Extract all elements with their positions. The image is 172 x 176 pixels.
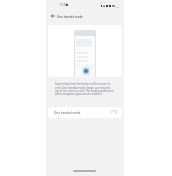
staticText: One-handed mode [54,111,81,115]
button[interactable]: Back [48,11,58,21]
staticText: 11:52 [60,3,68,7]
staticText: One-handed mode [57,15,83,19]
staticText: Swipe down from the bottom of the screen… [55,82,114,95]
button[interactable]: One-handed mode [48,107,122,118]
staticText: 86 [116,5,119,8]
